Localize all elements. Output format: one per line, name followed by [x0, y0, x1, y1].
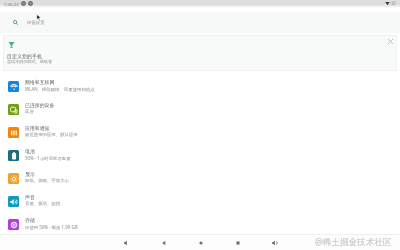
staticText: 蓝牙 [25, 109, 34, 115]
button[interactable]: 搜索设置 [0, 12, 400, 33]
staticText: 已连接的设备 [25, 102, 55, 108]
button[interactable]: 电池 [0, 144, 400, 167]
staticText: 最近使用的应用、默认应用 [25, 132, 78, 138]
staticText: 50% - 1小时后耗尽电量 [25, 155, 71, 161]
staticText: WLAN、移动网络、流量使用和热点 [25, 86, 95, 92]
staticText: 尝试不同的样式、壁纸等 [7, 59, 53, 64]
staticText: 壁纸、休眠、字体大小 [25, 178, 69, 184]
button[interactable]: 调低音量 [121, 237, 132, 248]
staticText: 声音 [25, 194, 35, 200]
button[interactable]: 已连接的设备 [0, 98, 400, 121]
button[interactable]: 关闭 [384, 35, 397, 48]
button[interactable]: 最近任务 [232, 237, 243, 248]
button[interactable]: 显示 [0, 167, 400, 190]
button[interactable]: 自定义您的手机 [3, 35, 397, 71]
staticText: 7:46:22 [4, 1, 19, 7]
staticText: 电池 [25, 148, 35, 154]
staticText: 音量、振动、勿扰 [25, 201, 61, 207]
staticText: 存储 [25, 217, 35, 223]
staticText: 搜索设置 [27, 20, 45, 26]
staticText: 自定义您的手机 [7, 53, 42, 59]
button[interactable]: 主屏幕 [195, 237, 206, 248]
staticText: @稀土掘金技术社区 [315, 236, 392, 248]
staticText: 网络和互联网 [25, 79, 55, 85]
staticText: 已使用 50% - 剩余 1.99 GB [25, 224, 78, 230]
staticText: 显示 [25, 171, 35, 177]
button[interactable]: 调高音量 [269, 237, 280, 248]
button[interactable]: 应用和通知 [0, 121, 400, 144]
staticText: 应用和通知 [25, 125, 50, 131]
button[interactable]: 网络和互联网 [0, 75, 400, 98]
button[interactable]: 存储 [0, 213, 400, 236]
button[interactable]: 声音 [0, 190, 400, 213]
button[interactable]: 返回 [158, 237, 169, 248]
